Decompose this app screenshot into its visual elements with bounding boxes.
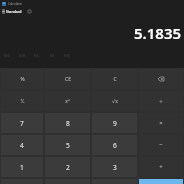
- staticText: C: [113, 76, 117, 83]
- button[interactable]: M-: [45, 50, 60, 61]
- staticText: 2: [66, 163, 70, 172]
- button[interactable]: MC: [0, 50, 15, 61]
- button[interactable]: x²: [45, 91, 90, 111]
- staticText: MS: [64, 53, 71, 59]
- button[interactable]: 3: [92, 157, 137, 177]
- staticText: ÷: [159, 97, 163, 105]
- button[interactable]: Backspace: [139, 69, 183, 89]
- button[interactable]: CE: [45, 69, 90, 89]
- button[interactable]: 2: [45, 157, 90, 177]
- button[interactable]: %: [1, 69, 43, 89]
- staticText: CE: [65, 76, 71, 83]
- staticText: Standard: [6, 9, 22, 14]
- button[interactable]: M+: [30, 50, 45, 61]
- button[interactable]: MS: [60, 50, 75, 61]
- staticText: 4: [20, 141, 24, 150]
- button[interactable]: 1: [1, 157, 43, 177]
- button[interactable]: Keep on top: [26, 6, 32, 17]
- button[interactable]: MR: [15, 50, 30, 61]
- staticText: 5: [66, 141, 70, 150]
- staticText: +: [159, 163, 163, 171]
- staticText: MR: [19, 53, 26, 59]
- staticText: M-: [50, 53, 56, 59]
- staticText: ¹⁄ₓ: [20, 98, 25, 105]
- staticText: 7: [20, 119, 24, 128]
- staticText: MC: [4, 53, 11, 59]
- button[interactable]: ÷: [139, 91, 183, 111]
- staticText: %: [20, 76, 25, 83]
- button[interactable]: 9: [92, 113, 137, 133]
- staticText: x²: [65, 98, 70, 105]
- staticText: 8: [66, 119, 70, 128]
- button[interactable]: −: [139, 135, 183, 155]
- button[interactable]: 4: [1, 135, 43, 155]
- staticText: 1: [20, 163, 24, 172]
- staticText: ×: [159, 119, 163, 127]
- staticText: Calculator: [8, 2, 23, 6]
- staticText: √x: [112, 98, 118, 105]
- staticText: 9: [113, 119, 117, 128]
- button[interactable]: +: [139, 157, 183, 177]
- button[interactable]: ×: [139, 113, 183, 133]
- button[interactable]: ¹⁄ₓ: [1, 91, 43, 111]
- button[interactable]: Open Navigation: [0, 6, 6, 17]
- staticText: 6: [113, 141, 117, 150]
- staticText: −: [159, 141, 163, 149]
- staticText: M+: [34, 53, 41, 59]
- button[interactable]: 5: [45, 135, 90, 155]
- staticText: 3: [113, 163, 117, 172]
- staticText: 5.1835: [134, 23, 182, 43]
- button[interactable]: C: [92, 69, 137, 89]
- button[interactable]: 6: [92, 135, 137, 155]
- button[interactable]: √x: [92, 91, 137, 111]
- button[interactable]: 8: [45, 113, 90, 133]
- button[interactable]: 7: [1, 113, 43, 133]
